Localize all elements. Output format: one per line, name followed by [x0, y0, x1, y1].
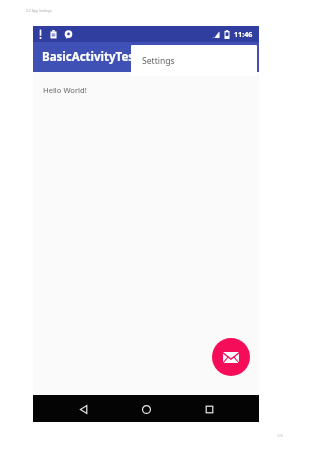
staticText: 220 — [277, 433, 283, 438]
staticText: 5.2 App Settings — [26, 8, 52, 13]
button[interactable]: Settings — [131, 45, 257, 76]
staticText: BasicActivityTest — [42, 49, 140, 65]
button[interactable]: Home — [133, 396, 159, 422]
staticText: 11:46 — [234, 29, 253, 39]
staticText: Hello World! — [43, 85, 87, 95]
button[interactable]: Send email — [212, 338, 250, 376]
button[interactable]: Recents — [196, 396, 222, 422]
button[interactable]: Back — [70, 396, 96, 422]
staticText: Settings — [142, 55, 175, 67]
